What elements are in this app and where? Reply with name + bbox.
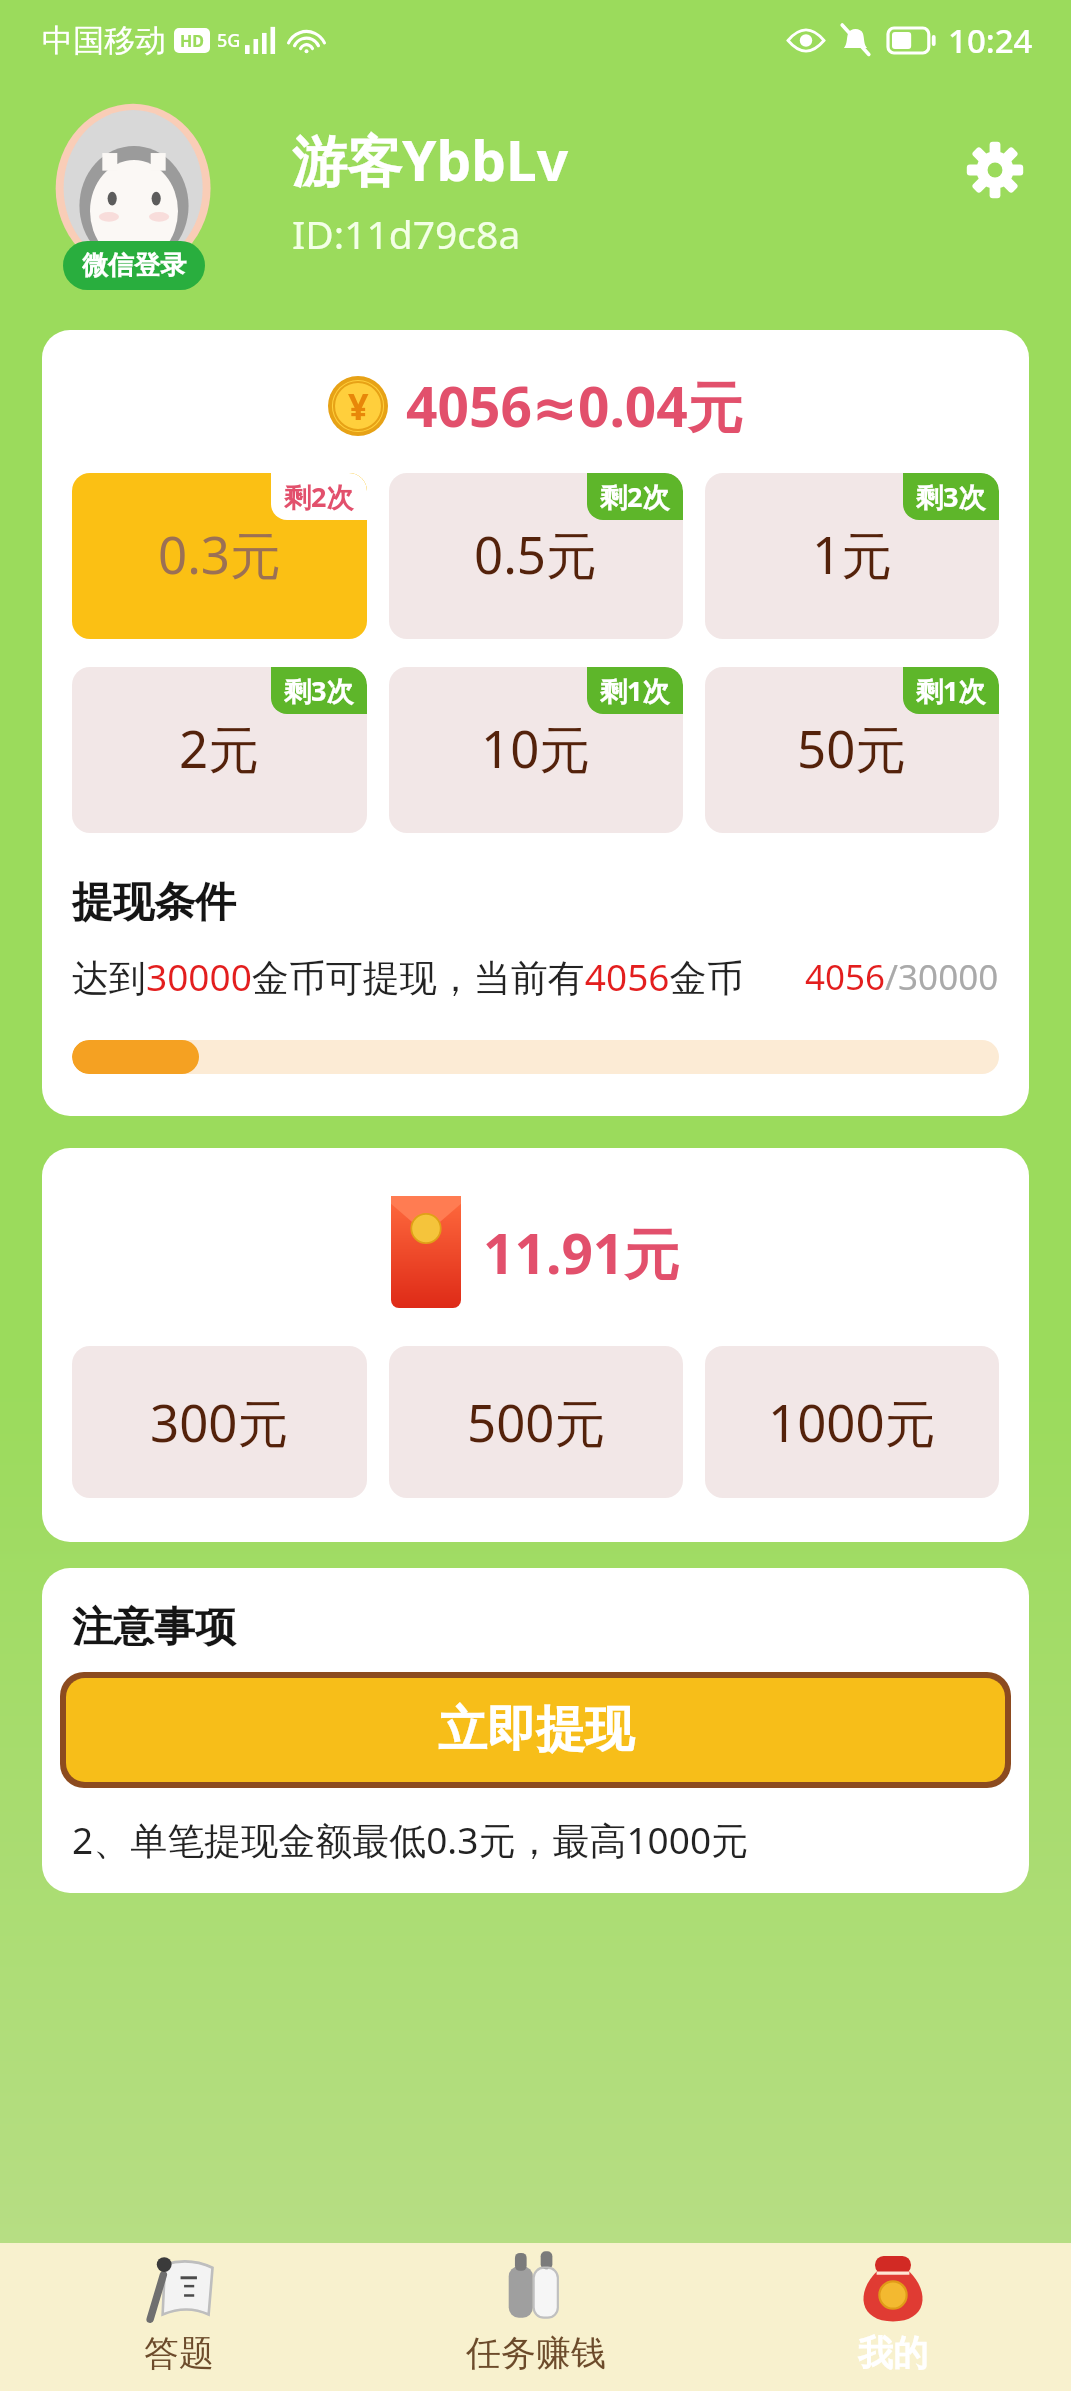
staticText: 剩3次 — [284, 672, 354, 709]
staticText: 2、单笔提现金额最低0.3元，最高1000元 — [72, 1814, 749, 1865]
staticText: 1元 — [812, 519, 893, 589]
button[interactable]: 0.3元 — [72, 473, 367, 639]
staticText: 剩1次 — [916, 672, 986, 709]
staticText: 剩2次 — [600, 478, 670, 515]
button[interactable]: 我的 — [714, 2243, 1071, 2391]
staticText: 50元 — [797, 713, 907, 783]
button[interactable]: 2元 — [72, 667, 367, 833]
staticText: 0.5元 — [474, 519, 598, 589]
staticText: 11.91元 — [483, 1215, 680, 1290]
staticText: 中国移动 — [42, 21, 166, 60]
staticText: 10:24 — [948, 18, 1033, 63]
staticText: 提现条件 — [72, 877, 236, 929]
staticText: 剩2次 — [284, 478, 354, 515]
button[interactable]: 10元 — [389, 667, 683, 833]
staticText: 4056≈0.04元 — [406, 368, 743, 443]
button[interactable]: 答题 — [0, 2243, 357, 2391]
staticText: 注意事项 — [72, 1602, 236, 1654]
button[interactable]: Settings — [957, 132, 1033, 208]
staticText: 剩3次 — [916, 478, 986, 515]
staticText: 任务赚钱 — [466, 2331, 606, 2375]
button[interactable]: 0.5元 — [389, 473, 683, 639]
button[interactable]: 立即提现 — [66, 1678, 1005, 1782]
staticText: 我的 — [858, 2331, 928, 2375]
staticText: 10元 — [481, 713, 591, 783]
staticText: 剩1次 — [600, 672, 670, 709]
staticText: 0.3元 — [158, 519, 282, 589]
staticText: 5G — [217, 28, 241, 53]
staticText: ¥ — [348, 382, 369, 431]
staticText: 300元 — [150, 1387, 289, 1457]
button[interactable]: 任务赚钱 — [357, 2243, 714, 2391]
button[interactable]: 1元 — [705, 473, 999, 639]
staticText: 游客YbbLv — [292, 122, 569, 197]
staticText: ID:11d79c8a — [292, 207, 521, 260]
button[interactable]: 1000元 — [705, 1346, 999, 1498]
button[interactable]: 微信登录 — [63, 241, 205, 290]
staticText: 微信登录 — [82, 249, 186, 282]
button[interactable]: 300元 — [72, 1346, 367, 1498]
staticText: 2元 — [179, 713, 260, 783]
button[interactable]: 500元 — [389, 1346, 683, 1498]
staticText: 1000元 — [768, 1387, 936, 1457]
staticText: 4056/30000 — [805, 953, 999, 1001]
staticText: 答题 — [144, 2331, 214, 2375]
staticText: 达到30000金币可提现，当前有4056金币 — [72, 951, 791, 1002]
staticText: 立即提现 — [438, 1699, 634, 1761]
button[interactable]: 50元 — [705, 667, 999, 833]
staticText: 500元 — [467, 1387, 606, 1457]
staticText: HD — [180, 30, 204, 52]
